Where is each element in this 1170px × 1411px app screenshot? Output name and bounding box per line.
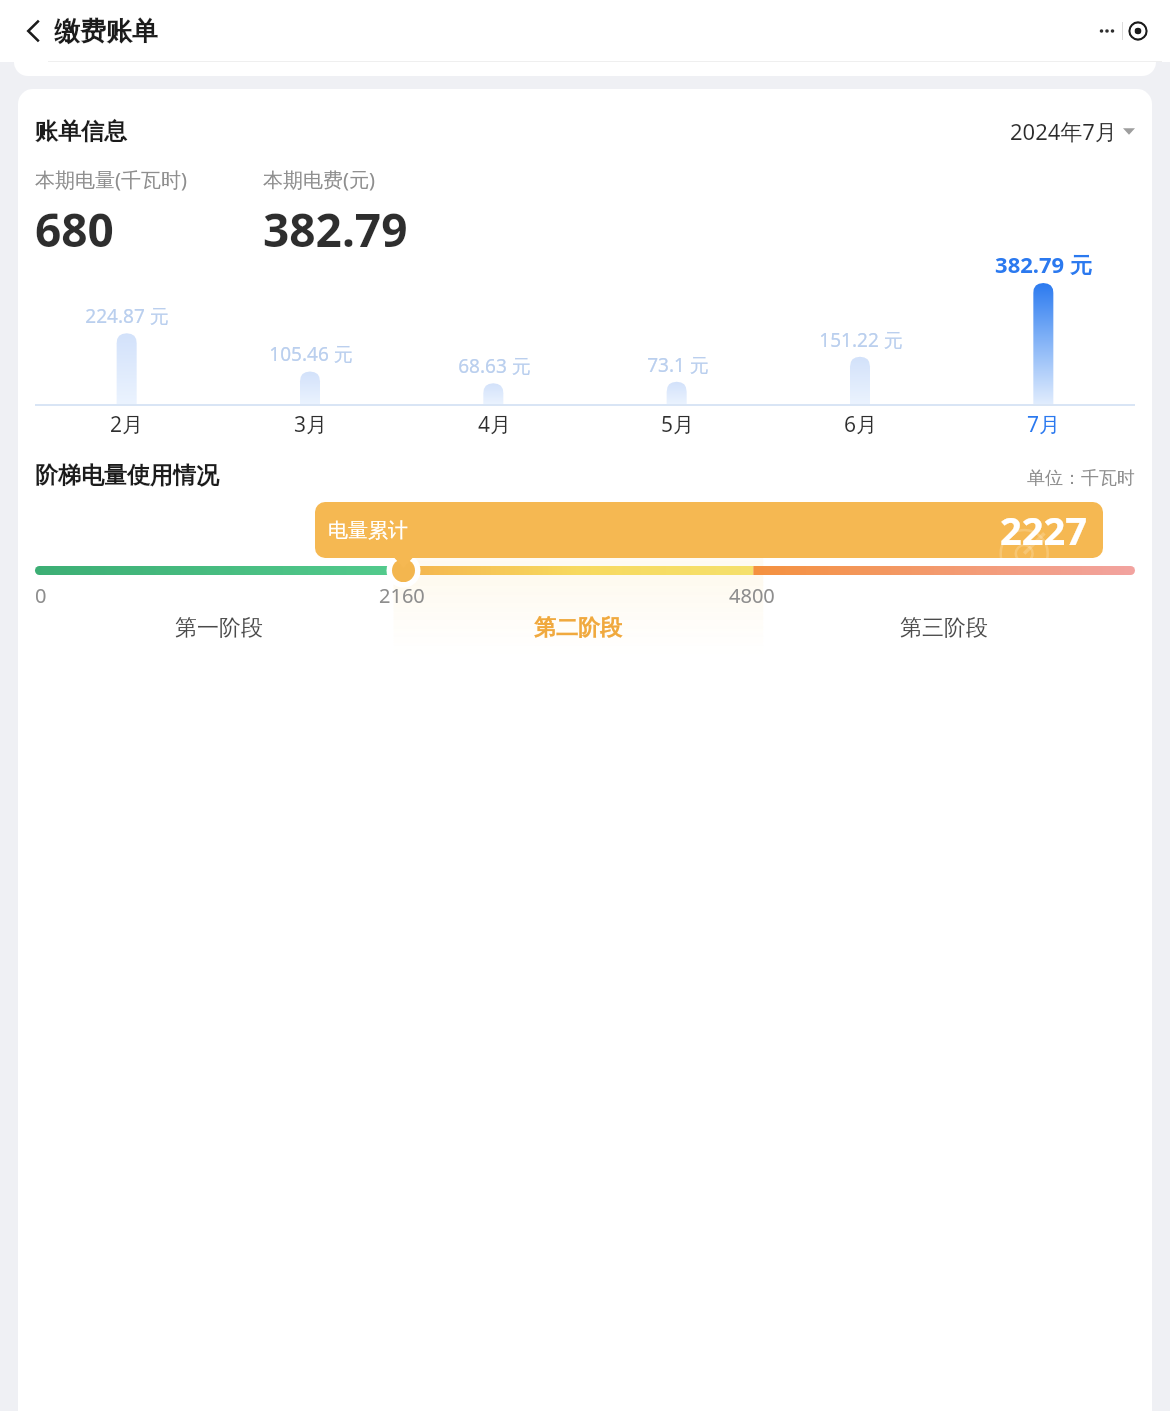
staticText: 第一阶段 (175, 614, 263, 642)
button[interactable]: 2024年7月 (1010, 116, 1135, 146)
staticText: 2160 (379, 582, 425, 609)
staticText: 账单信息 (35, 117, 127, 146)
staticText: 本期电费(元) (263, 166, 375, 193)
staticText: 7月 (1027, 410, 1061, 439)
button[interactable]: More options (1092, 16, 1122, 46)
staticText: 第三阶段 (900, 614, 988, 642)
staticText: 68.63 元 (458, 353, 531, 379)
staticText: 2月 (110, 410, 144, 439)
staticText: 680 (35, 198, 114, 261)
button[interactable]: Close mini program (1123, 16, 1152, 46)
staticText: 2024年7月 (1010, 116, 1117, 146)
staticText: 6月 (844, 410, 878, 439)
staticText: 382.79 (263, 198, 408, 261)
staticText: 单位：千瓦时 (1027, 467, 1135, 490)
staticText: 2227 (1000, 504, 1087, 556)
staticText: 阶梯电量使用情况 (35, 461, 219, 490)
staticText: 0 (35, 582, 47, 609)
staticText: 105.46 元 (269, 341, 353, 367)
staticText: 224.87 元 (85, 303, 169, 329)
staticText: 73.1 元 (647, 352, 709, 378)
staticText: 3月 (294, 410, 328, 439)
staticText: 本期电量(千瓦时) (35, 166, 187, 193)
staticText: 151.22 元 (819, 327, 903, 353)
staticText: 4800 (729, 582, 775, 609)
staticText: 382.79 元 (995, 249, 1092, 279)
staticText: 4月 (478, 410, 512, 439)
staticText: 第二阶段 (534, 614, 622, 642)
staticText: 5月 (661, 410, 695, 439)
button[interactable]: Back (16, 13, 52, 49)
staticText: 电量累计 (328, 518, 408, 543)
staticText: 缴费账单 (54, 15, 158, 48)
button[interactable]: 电量累计 (315, 502, 1103, 558)
